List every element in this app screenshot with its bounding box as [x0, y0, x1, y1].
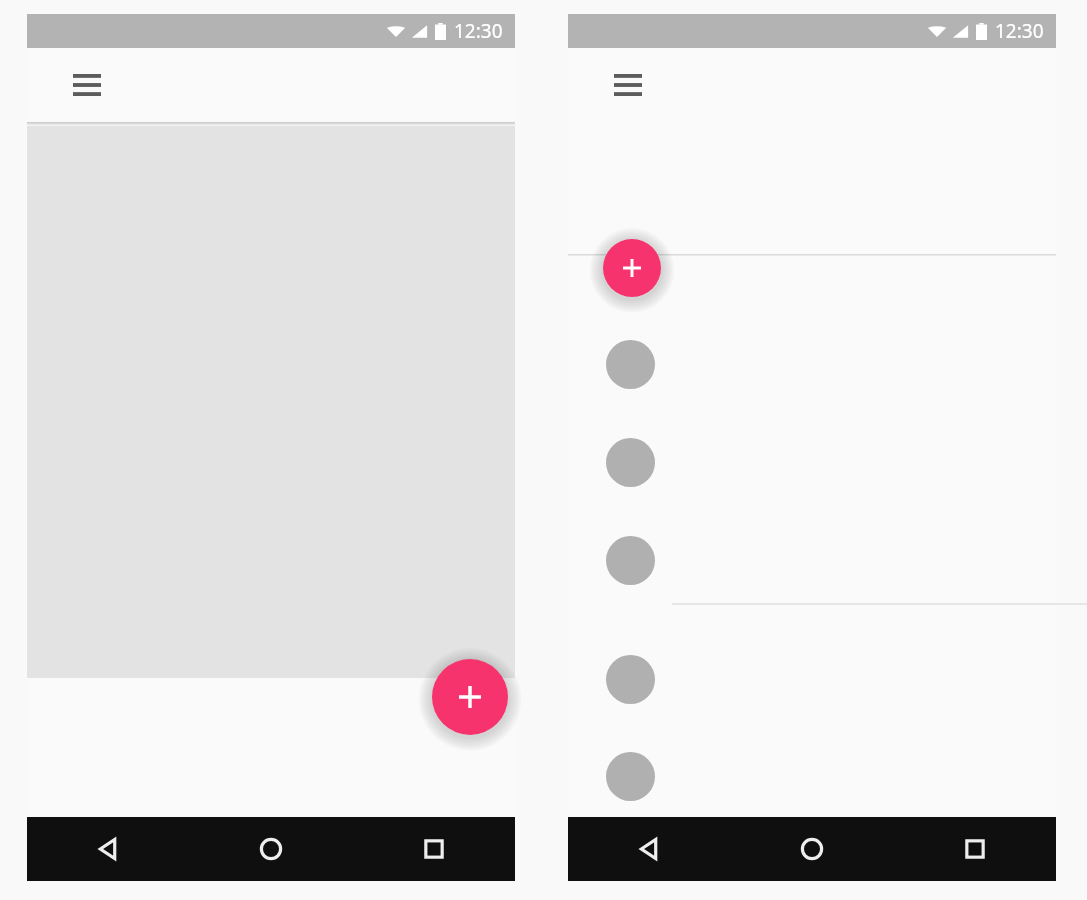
- button[interactable]: Add: [588, 224, 676, 312]
- staticText: 12:30: [454, 18, 503, 44]
- button[interactable]: Contact avatar: [592, 522, 668, 598]
- button[interactable]: Home: [189, 817, 352, 881]
- button[interactable]: Add: [417, 644, 523, 750]
- button[interactable]: Recent apps: [352, 817, 515, 881]
- button[interactable]: Back: [568, 817, 730, 881]
- staticText: 12:30: [995, 18, 1044, 44]
- button[interactable]: Open navigation menu: [606, 63, 650, 107]
- button[interactable]: Home: [730, 817, 893, 881]
- button[interactable]: Contact avatar: [592, 424, 668, 500]
- button[interactable]: Contact avatar: [592, 738, 668, 814]
- button[interactable]: Contact avatar: [592, 641, 668, 717]
- button[interactable]: Contact avatar: [592, 326, 668, 402]
- button[interactable]: Open navigation menu: [65, 63, 109, 107]
- button[interactable]: Back: [27, 817, 189, 881]
- button[interactable]: Recent apps: [893, 817, 1056, 881]
